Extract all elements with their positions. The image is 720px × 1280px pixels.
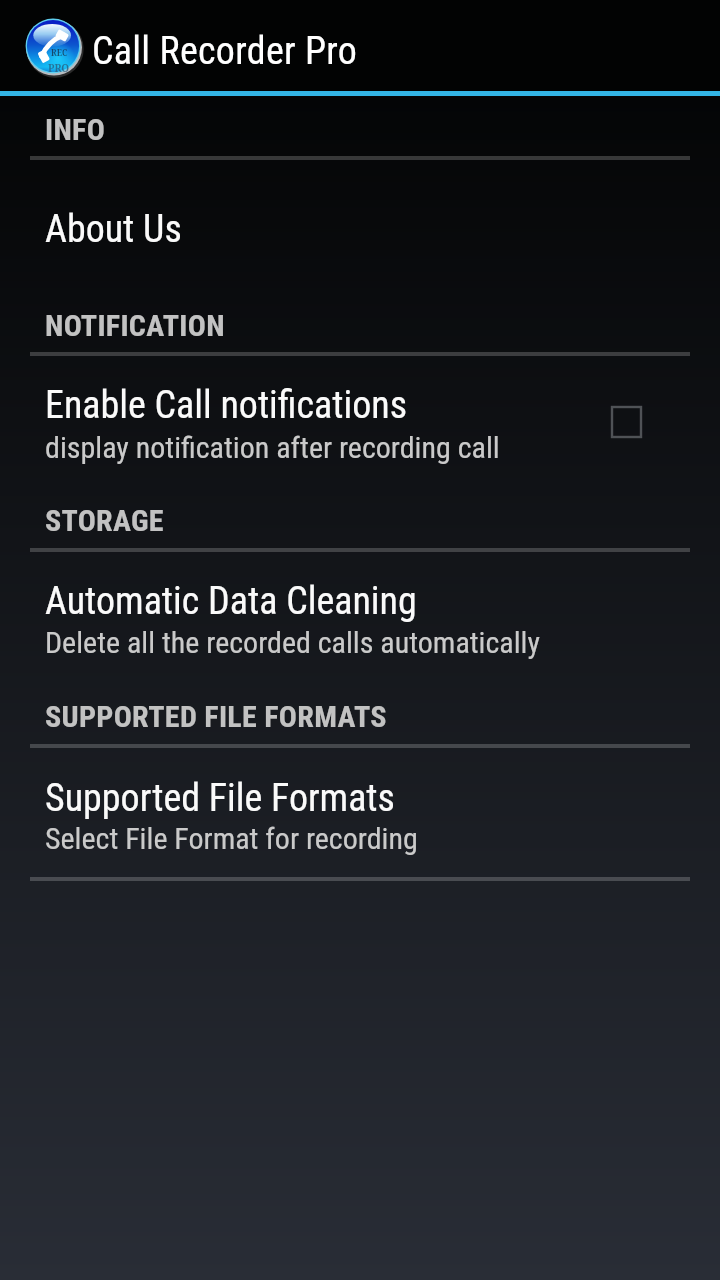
staticText: SUPPORTED FILE FORMATS [45,699,387,734]
button[interactable]: Enable Call notifications [0,356,720,476]
staticText: About Us [45,207,182,252]
button[interactable]: Automatic Data Cleaning [0,552,720,672]
staticText: STORAGE [45,503,164,538]
staticText: INFO [45,112,106,147]
button[interactable]: Call Recorder Pro [24,16,82,78]
staticText: Enable Call notifications [45,383,408,428]
staticText: NOTIFICATION [45,308,225,343]
staticText: Automatic Data Cleaning [45,579,417,624]
staticText: PRO [48,61,70,75]
staticText: display notification after recording cal… [45,430,500,465]
other: Enable call notifications checkbox [611,406,642,438]
button[interactable]: Supported File Formats [0,748,720,877]
staticText: Delete all the recorded calls automatica… [45,625,540,660]
staticText: Supported File Formats [45,776,395,821]
staticText: REC [51,47,68,58]
staticText: Call Recorder Pro [92,29,358,74]
button[interactable]: About Us [0,160,720,260]
staticText: Select File Format for recording [45,821,418,856]
